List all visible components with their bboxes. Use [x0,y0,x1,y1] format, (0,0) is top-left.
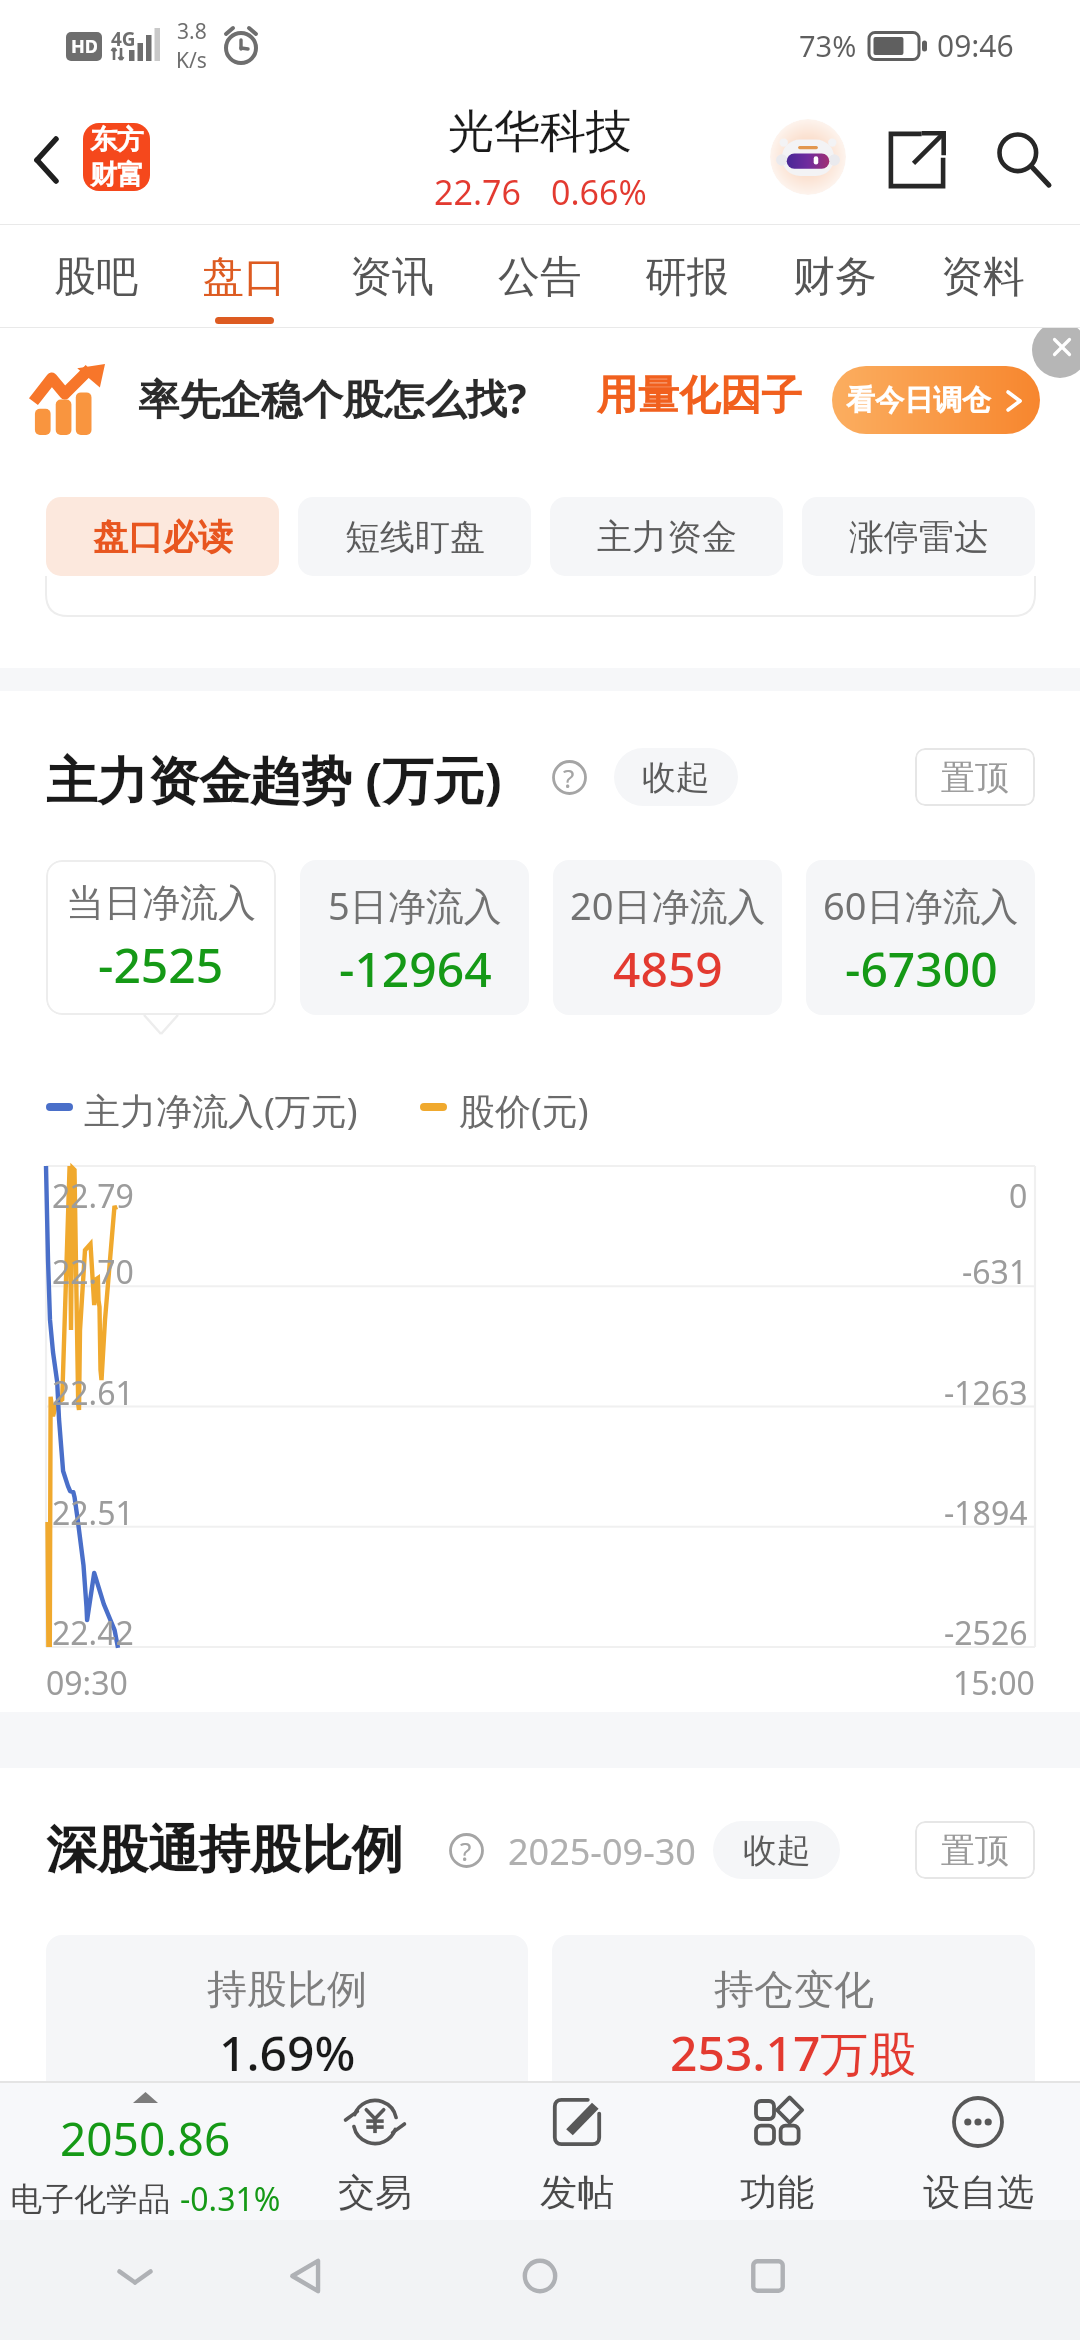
button[interactable]: 发帖 [497,2083,657,2220]
staticText: 置顶 [941,756,1009,799]
staticText: -12964 [339,936,492,1001]
staticText: 置顶 [941,1829,1009,1872]
staticText: 2050.86 [60,2107,231,2170]
staticText: -67300 [845,936,998,1001]
button[interactable]: Search [979,117,1064,202]
staticText: 253.17万股 [670,2020,917,2086]
button[interactable]: 功能 [697,2083,857,2220]
button[interactable]: 盘口必读 [46,497,279,576]
staticText: 22.61 [52,1371,134,1415]
staticText: 股价(元) [459,1086,589,1135]
button[interactable]: 主力资金趋势 (万元) [46,744,502,810]
staticText: 光华科技 [448,103,632,161]
button[interactable]: Back [0,118,84,202]
button[interactable]: Close ad [1024,328,1080,384]
staticText: 研报 [645,251,729,304]
button[interactable]: 盘口 [202,225,286,327]
staticText: 2025-09-30 [508,1827,696,1873]
staticText: 深股通持股比例 [46,1818,403,1882]
staticText: -1894 [944,1491,1028,1535]
button[interactable]: 交易 [295,2083,455,2220]
button[interactable]: 资料 [941,225,1025,327]
staticText: 持仓变化 [714,1964,874,2014]
staticText: 发帖 [540,2169,614,2216]
button[interactable]: 财务 [793,225,877,327]
button[interactable]: East Money [83,123,150,191]
staticText: 15:00 [953,1661,1035,1705]
button[interactable]: 置顶 [915,748,1035,806]
button[interactable]: 收起 [713,1821,840,1879]
staticText: 4G [111,26,136,52]
button[interactable]: 公告 [498,225,582,327]
staticText: -631 [962,1250,1028,1294]
button[interactable]: Help [549,757,589,797]
staticText: 主力净流入(万元) [84,1086,358,1135]
staticText: 主力资金 [597,515,737,559]
staticText: 功能 [740,2169,814,2216]
button[interactable]: 股吧 [54,225,138,327]
staticText: 0 [1009,1174,1028,1218]
button[interactable]: Help [446,1830,486,1870]
staticText: -2526 [944,1611,1028,1655]
staticText: 0.66% [551,169,647,215]
staticText: K/s [176,46,207,75]
button[interactable]: 深股通持股比例 [46,1817,403,1883]
button[interactable]: Back [271,2240,343,2312]
button[interactable]: 看今日调仓 [832,366,1040,434]
button[interactable]: Home [504,2240,576,2312]
staticText: 当日净流入 [66,879,256,927]
button[interactable]: 60日净流入 [806,860,1035,1015]
staticText: 主力资金趋势 (万元) [46,744,502,810]
button[interactable]: 设自选 [898,2083,1058,2220]
staticText: HD [71,34,98,59]
button[interactable]: 持股比例 [46,1935,528,2155]
staticText: 率先企稳个股怎么找? [138,370,527,426]
button[interactable]: Share [874,117,959,202]
staticText: 资料 [941,251,1025,304]
staticText: ? [460,1833,472,1868]
staticText: 1.69% [219,2020,356,2085]
staticText: 东方 [90,123,144,157]
button[interactable]: 置顶 [915,1821,1035,1879]
button[interactable]: 资讯 [350,225,434,327]
button[interactable]: Hide [99,2240,171,2312]
staticText: 4859 [613,936,723,1001]
staticText: -1263 [944,1371,1028,1415]
button[interactable]: 20日净流入 [553,860,782,1015]
button[interactable]: 研报 [645,225,729,327]
button[interactable]: 持仓变化 [552,1935,1035,2155]
staticText: 电子化学品 [10,2179,170,2219]
button[interactable]: 主力资金 [550,497,783,576]
button[interactable]: AI assistant [770,119,846,195]
staticText: 收起 [743,1829,811,1872]
button[interactable]: 涨停雷达 [802,497,1035,576]
staticText: 股吧 [54,251,138,304]
button[interactable]: 短线盯盘 [298,497,531,576]
staticText: 持股比例 [207,1964,367,2014]
staticText: 财富 [90,158,144,191]
staticText: ? [563,760,575,795]
button[interactable]: 当日净流入 [46,860,276,1015]
staticText: 60日净流入 [823,879,1019,931]
staticText: 盘口必读 [93,515,233,559]
button[interactable]: 收起 [614,748,738,806]
staticText: 涨停雷达 [849,515,989,559]
button[interactable]: Recents [732,2240,804,2312]
button[interactable]: 2050.86 [0,2083,290,2220]
staticText: 5日净流入 [328,879,502,931]
staticText: 收起 [642,756,710,799]
staticText: 交易 [338,2169,412,2216]
staticText: 短线盯盘 [345,515,485,559]
staticText: 用量化因子 [597,370,802,422]
staticText: 看今日调仓 [846,382,991,419]
staticText: 盘口 [202,251,286,304]
staticText: -0.31% [180,2177,281,2220]
staticText: 20日净流入 [570,879,766,931]
button[interactable]: 5日净流入 [300,860,529,1015]
staticText: 09:30 [46,1661,128,1705]
staticText: 22.51 [52,1491,134,1535]
staticText: 3.8 [177,17,207,46]
staticText: 22.79 [52,1174,134,1218]
staticText: 财务 [793,251,877,304]
staticText: 设自选 [923,2169,1034,2216]
